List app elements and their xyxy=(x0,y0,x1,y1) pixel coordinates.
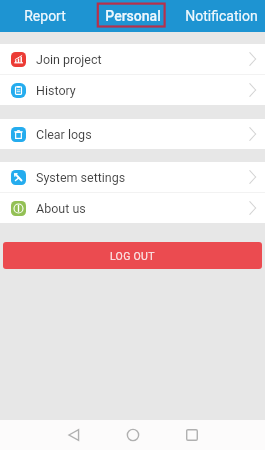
button[interactable]: Report xyxy=(0,0,89,32)
staticText: Personal xyxy=(105,8,161,24)
staticText: Notification xyxy=(185,8,258,24)
staticText: LOG OUT xyxy=(110,250,155,262)
button[interactable]: About us xyxy=(0,193,265,223)
staticText: Report xyxy=(24,8,66,24)
button[interactable]: Home xyxy=(120,422,146,448)
button[interactable]: System settings xyxy=(0,162,265,192)
button[interactable]: Personal xyxy=(89,0,177,32)
staticText: Clear logs xyxy=(36,127,92,142)
staticText: Join project xyxy=(36,52,102,67)
button[interactable]: History xyxy=(0,75,265,105)
staticText: History xyxy=(36,83,76,98)
staticText: About us xyxy=(36,201,86,216)
button[interactable]: Join project xyxy=(0,44,265,74)
button[interactable]: Clear logs xyxy=(0,119,265,149)
button[interactable]: Back xyxy=(61,422,87,448)
button[interactable]: Recents xyxy=(179,422,205,448)
button[interactable]: LOG OUT xyxy=(3,242,262,269)
staticText: System settings xyxy=(36,170,126,185)
button[interactable]: Notification xyxy=(177,0,265,32)
